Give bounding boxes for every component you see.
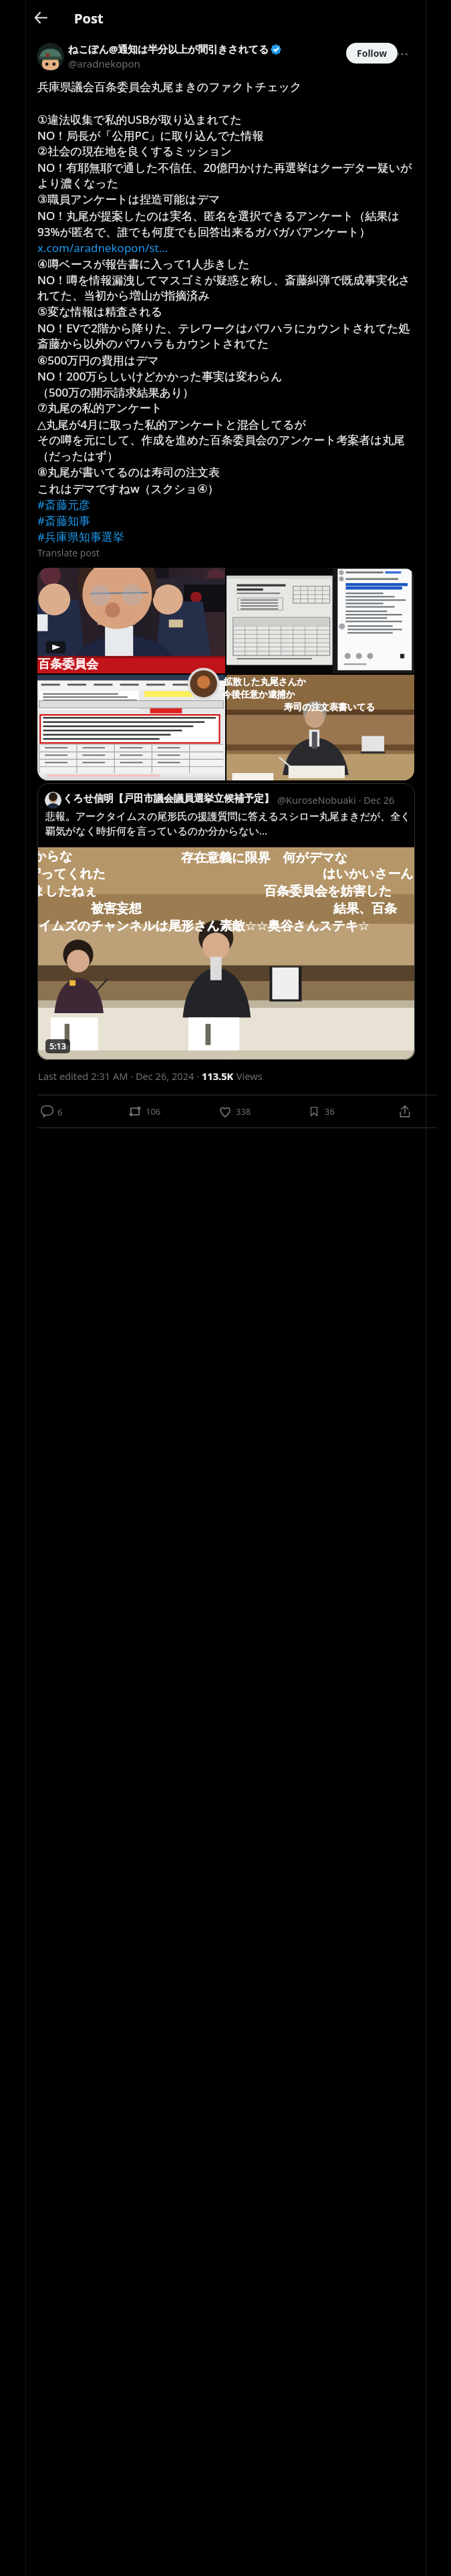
- staticText: 被害妄想: [91, 901, 142, 917]
- staticText: ⑧丸尾が書いてるのは寿司の注文表: [37, 465, 220, 479]
- staticText: れてた、当初から増山が指摘済み: [37, 289, 210, 303]
- button[interactable]: Translate post: [37, 546, 100, 559]
- staticText: タイムズのチャンネルは尾形さん素敵☆☆奥谷さんステキ☆: [37, 918, 370, 934]
- staticText: 今後任意か逮捕か: [222, 689, 295, 700]
- staticText: はいかいさーん: [323, 866, 414, 882]
- staticText: 338: [236, 1105, 251, 1117]
- staticText: NO！EVで2階から降りた、テレワークはパワハラにカウントされてた処か: [37, 320, 420, 336]
- staticText: からな: [37, 849, 73, 865]
- staticText: #兵庫県知事選挙: [37, 529, 124, 544]
- staticText: #斎藤知事: [37, 513, 90, 528]
- staticText: これはデマですねw（スクショ④）: [37, 481, 219, 496]
- staticText: 覇気がなく時折何を言っているのか分からない...: [45, 824, 267, 837]
- staticText: ③職員アンケートは捏造可能はデマ: [37, 193, 220, 207]
- staticText: 93%が匿名で、誰でも何度でも回答出来るガバガバアンケート）: [37, 224, 371, 239]
- staticText: その噂を元にして、作成を進めた百条委員会のアンケート考案者は丸尾: [37, 433, 405, 447]
- staticText: 百条委員会を妨害した: [264, 883, 392, 899]
- staticText: NO！有耶無耶で通した不信任、20億円かけた再選挙はクーデター疑いが: [37, 160, 412, 175]
- staticText: 113.5K: [202, 1069, 234, 1083]
- button[interactable]: Share: [391, 1097, 419, 1125]
- staticText: ⑥500万円の費用はデマ: [37, 352, 160, 368]
- button[interactable]: Repost: [122, 1097, 202, 1125]
- staticText: ⑦丸尾の私的アンケート: [37, 401, 163, 415]
- button[interactable]: More options: [391, 43, 414, 66]
- button[interactable]: Last edited 2:31 AM · Dec 26, 2024 ·: [38, 1069, 263, 1083]
- staticText: @KuroseNobuaki · Dec 26: [277, 793, 395, 807]
- button[interactable]: くろせ信明【戸田市議会議員選挙立候補予定】: [37, 783, 415, 1060]
- staticText: 存在意義に限界 何がデマな: [181, 849, 348, 866]
- staticText: ②社会の現在地を良くするミッション: [37, 144, 233, 158]
- button[interactable]: Reply: [35, 1097, 109, 1125]
- button[interactable]: Bookmark: [303, 1097, 377, 1125]
- staticText: Post: [74, 9, 104, 27]
- staticText: Last edited 2:31 AM · Dec 26, 2024 ·: [38, 1069, 202, 1083]
- staticText: NO！局長が「公用PC」に取り込んでた情報: [37, 128, 264, 143]
- staticText: #斎藤元彦: [37, 497, 90, 512]
- staticText: （だったはず）: [37, 449, 118, 463]
- staticText: 拡散した丸尾さんか: [224, 676, 307, 687]
- button[interactable]: Image 3: [37, 675, 225, 780]
- staticText: 結果、百条: [333, 901, 397, 917]
- staticText: 悲報。アークタイムスの尾形氏の援護質問に答えるスシロー丸尾まきだが、全く: [45, 811, 411, 823]
- staticText: ④噂ベースが報告書に入って1人歩きした: [37, 256, 250, 272]
- staticText: @aradnekopon: [68, 57, 140, 70]
- staticText: くろせ信明【戸田市議会議員選挙立候補予定】: [63, 792, 275, 805]
- staticText: 106: [146, 1105, 161, 1117]
- staticText: ⑤変な情報は精査される: [37, 305, 163, 319]
- staticText: NO！200万らしいけどかかった事実は変わらん: [37, 368, 283, 384]
- staticText: 6: [57, 1106, 63, 1118]
- staticText: 百条委員会: [38, 657, 98, 672]
- staticText: ましたねぇ: [37, 883, 98, 899]
- staticText: ねこぽん@通知は半分以上が間引きされてる: [68, 42, 269, 56]
- button[interactable]: Image 4: [227, 675, 414, 780]
- staticText: 36: [325, 1105, 335, 1117]
- button[interactable]: Image 1: [37, 568, 225, 673]
- button[interactable]: Image 2: [227, 568, 414, 673]
- button[interactable]: Back: [27, 4, 54, 31]
- staticText: NO！丸尾が提案したのは実名、匿名を選択できるアンケート（結果は: [37, 208, 400, 223]
- staticText: より濃くなった: [37, 177, 119, 191]
- button[interactable]: Follow: [346, 43, 398, 64]
- button[interactable]: Like: [213, 1097, 293, 1125]
- staticText: （500万の開示請求結果あり）: [37, 385, 194, 400]
- staticText: 兵庫県議会百条委員会丸尾まきのファクトチェック: [37, 80, 302, 94]
- staticText: 5:13: [49, 1041, 66, 1052]
- button[interactable]: Profile photo: [37, 43, 64, 70]
- staticText: 守ってくれた: [37, 866, 106, 882]
- staticText: x.com/aradnekopon/st...: [37, 240, 168, 255]
- staticText: Follow: [357, 47, 388, 60]
- staticText: ①違法収集で私的USBが取り込まれてた: [37, 112, 242, 127]
- staticText: 斎藤から以外のパワハラもカウントされてた: [37, 337, 269, 351]
- staticText: 寿司の注文表書いてる: [284, 702, 375, 713]
- staticText: Views: [234, 1069, 263, 1083]
- staticText: △丸尾が4月に取った私的アンケートと混合してるが: [37, 417, 306, 432]
- staticText: NO！噂を情報漏洩してマスゴミが疑惑と称し、斎藤糾弾で既成事実化さ: [37, 272, 410, 288]
